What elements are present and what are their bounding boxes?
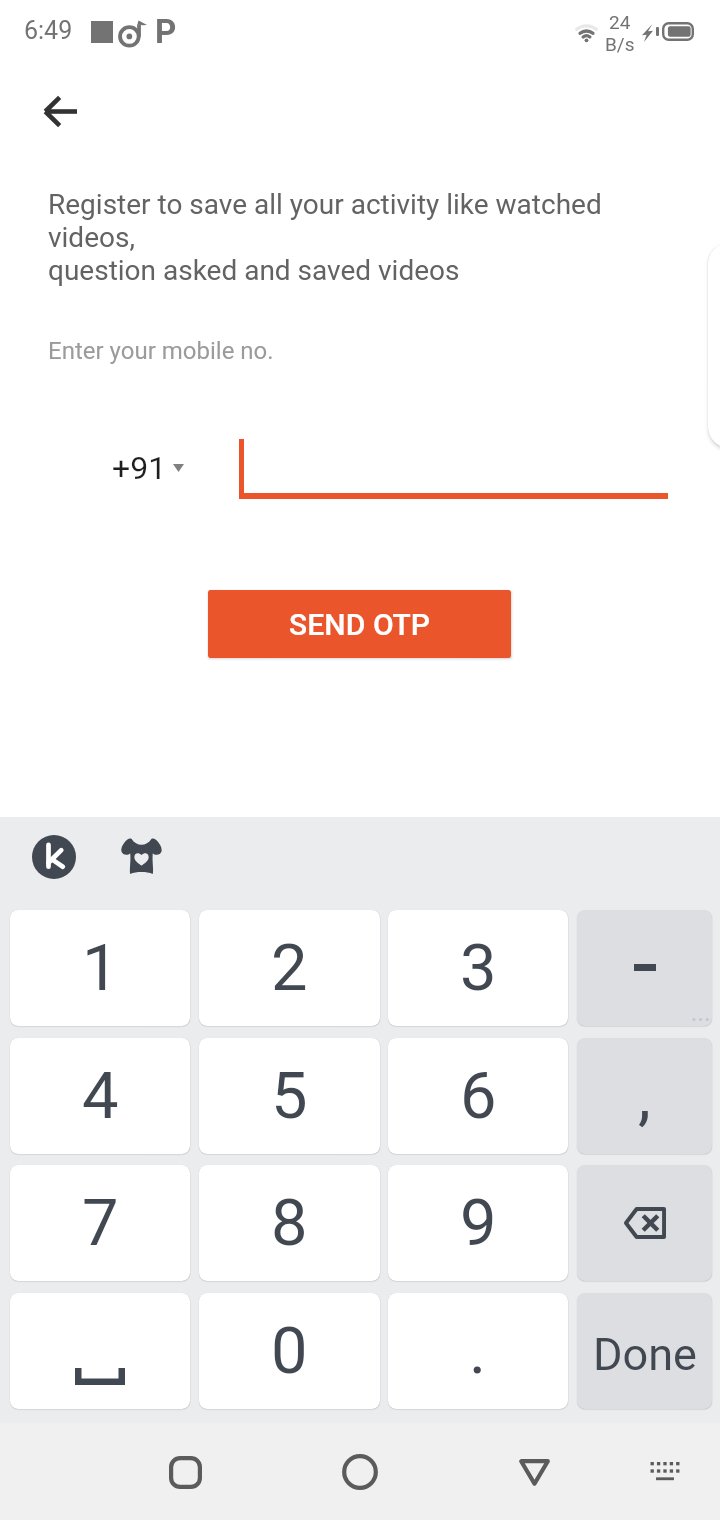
staticText: +91 [112, 449, 167, 487]
staticText: 0 [271, 1313, 308, 1389]
button[interactable] [10, 1293, 190, 1409]
button[interactable]: Home [316, 1428, 404, 1516]
button[interactable]: 1 [10, 910, 190, 1026]
staticText: 4 [82, 1058, 119, 1134]
button[interactable]: 2 [199, 910, 380, 1026]
button[interactable] [577, 910, 712, 1026]
button[interactable] [577, 1165, 712, 1281]
button[interactable]: Recents [141, 1428, 229, 1516]
staticText: . [469, 1313, 487, 1389]
button[interactable]: , [577, 1038, 712, 1154]
button[interactable]: 3 [388, 910, 568, 1026]
staticText: 9 [460, 1185, 497, 1261]
button[interactable]: +91 [112, 446, 184, 490]
button[interactable]: 0 [199, 1293, 380, 1409]
staticText: P [155, 12, 177, 51]
staticText: 24 [609, 11, 631, 33]
staticText: B/s [605, 33, 635, 55]
staticText: 1 [82, 930, 119, 1006]
button[interactable]: Show keyboard [621, 1428, 709, 1516]
button[interactable]: SEND OTP [208, 590, 511, 658]
button[interactable]: Done [577, 1293, 712, 1409]
staticText: SEND OTP [289, 607, 431, 642]
button[interactable]: 6 [388, 1038, 568, 1154]
button[interactable]: . [388, 1293, 568, 1409]
staticText: 2 [271, 930, 308, 1006]
button[interactable]: Stickers [121, 838, 162, 875]
staticText: Register to save all your activity like … [48, 188, 668, 287]
staticText: 7 [82, 1185, 119, 1261]
staticText: 5 [271, 1058, 308, 1134]
button[interactable]: 7 [10, 1165, 190, 1281]
button[interactable]: 5 [199, 1038, 380, 1154]
staticText: Enter your mobile no. [48, 337, 274, 365]
button[interactable]: Back [16, 75, 104, 147]
staticText: 8 [271, 1185, 308, 1261]
staticText: 3 [460, 930, 497, 1006]
staticText: Done [593, 1328, 697, 1381]
button[interactable]: 9 [388, 1165, 568, 1281]
button[interactable]: 4 [10, 1038, 190, 1154]
button[interactable]: 8 [199, 1165, 380, 1281]
staticText: , [638, 1058, 651, 1134]
staticText: 6 [460, 1058, 497, 1134]
button[interactable]: Kika keyboard [32, 835, 76, 879]
button[interactable]: Back [490, 1428, 578, 1516]
staticText: 6:49 [24, 16, 73, 45]
